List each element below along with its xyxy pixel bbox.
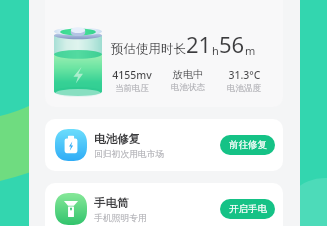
staticText: 当前电压	[115, 83, 149, 94]
staticText: 放电中	[172, 68, 204, 81]
staticText: 电池温度	[227, 83, 261, 94]
staticText: 电池修复	[94, 132, 140, 146]
staticText: 预估使用时长	[111, 41, 186, 57]
button[interactable]: 电池修复	[45, 119, 283, 171]
staticText: 开启手电	[229, 203, 267, 215]
staticText: 31.3°C	[228, 68, 261, 82]
staticText: 21	[186, 29, 212, 59]
staticText: 4155mv	[112, 68, 152, 82]
button[interactable]: 前往修复	[220, 135, 275, 155]
staticText: 56	[219, 29, 245, 59]
staticText: 手机照明专用	[94, 213, 147, 224]
staticText: 回归初次用电市场	[94, 149, 165, 160]
button[interactable]: 手电筒	[45, 183, 283, 226]
staticText: 电池状态	[171, 82, 205, 93]
staticText: m	[245, 43, 256, 58]
button[interactable]: 开启手电	[220, 199, 275, 219]
staticText: h	[212, 43, 219, 58]
staticText: 手电筒	[94, 196, 129, 210]
staticText: 前往修复	[229, 139, 267, 151]
